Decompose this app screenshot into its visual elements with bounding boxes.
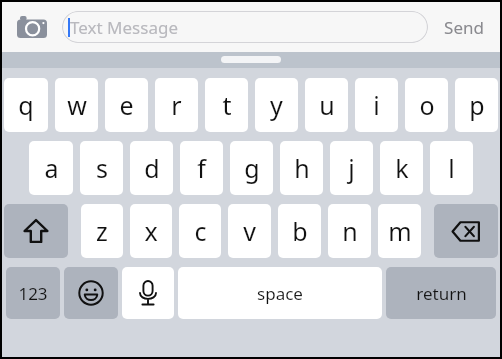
staticText: space — [257, 282, 303, 305]
staticText: p — [469, 88, 485, 122]
staticText: f — [197, 151, 206, 185]
button[interactable]: Send — [428, 2, 500, 52]
button[interactable]: n — [328, 204, 371, 258]
button[interactable]: q — [4, 78, 48, 132]
button[interactable]: u — [305, 78, 348, 132]
button[interactable]: e — [105, 78, 148, 132]
button[interactable]: return — [386, 267, 496, 319]
staticText: 123 — [18, 282, 48, 305]
button[interactable]: j — [330, 141, 373, 195]
staticText: r — [171, 88, 182, 122]
staticText: n — [342, 214, 358, 248]
button[interactable]: Backspace — [434, 204, 498, 258]
button[interactable]: Emoji — [64, 267, 118, 319]
button[interactable]: m — [378, 204, 421, 258]
staticText: Text Message — [70, 16, 178, 39]
staticText: l — [448, 151, 455, 185]
button[interactable]: Camera — [2, 2, 62, 52]
staticText: Send — [444, 16, 484, 39]
button[interactable]: Shift — [4, 204, 68, 258]
button[interactable]: l — [430, 141, 473, 195]
button[interactable]: Text Message — [62, 11, 428, 43]
button[interactable]: t — [205, 78, 248, 132]
staticText: k — [395, 151, 409, 185]
button[interactable]: h — [280, 141, 323, 195]
button[interactable]: k — [380, 141, 423, 195]
button[interactable]: space — [178, 267, 382, 319]
button[interactable]: z — [81, 204, 123, 258]
button[interactable]: s — [80, 141, 123, 195]
staticText: u — [319, 88, 335, 122]
button[interactable]: p — [455, 78, 498, 132]
button[interactable]: y — [255, 78, 298, 132]
button[interactable]: r — [155, 78, 198, 132]
staticText: a — [44, 151, 59, 185]
button[interactable]: Dictation — [122, 267, 174, 319]
button[interactable]: g — [230, 141, 273, 195]
button[interactable]: i — [355, 78, 398, 132]
button[interactable]: b — [278, 204, 321, 258]
staticText: q — [18, 88, 34, 122]
button[interactable]: v — [228, 204, 271, 258]
staticText: h — [294, 151, 310, 185]
button[interactable]: x — [130, 204, 172, 258]
staticText: o — [419, 88, 435, 122]
staticText: z — [96, 214, 108, 248]
staticText: x — [144, 214, 158, 248]
staticText: e — [119, 88, 134, 122]
button[interactable]: w — [55, 78, 98, 132]
staticText: v — [243, 214, 256, 248]
staticText: j — [348, 151, 355, 185]
button[interactable]: o — [405, 78, 448, 132]
staticText: c — [194, 214, 207, 248]
staticText: w — [67, 88, 87, 122]
button[interactable]: Keyboard handle — [221, 56, 281, 63]
button[interactable]: c — [179, 204, 221, 258]
button[interactable]: 123 — [6, 267, 60, 319]
staticText: i — [373, 88, 380, 122]
button[interactable]: f — [180, 141, 223, 195]
staticText: d — [144, 151, 160, 185]
staticText: s — [96, 151, 108, 185]
button[interactable]: d — [130, 141, 173, 195]
staticText: y — [270, 88, 283, 122]
button[interactable]: a — [29, 141, 73, 195]
staticText: t — [222, 88, 232, 122]
staticText: b — [292, 214, 308, 248]
staticText: return — [416, 282, 467, 305]
staticText: m — [388, 214, 412, 248]
staticText: g — [244, 151, 260, 185]
